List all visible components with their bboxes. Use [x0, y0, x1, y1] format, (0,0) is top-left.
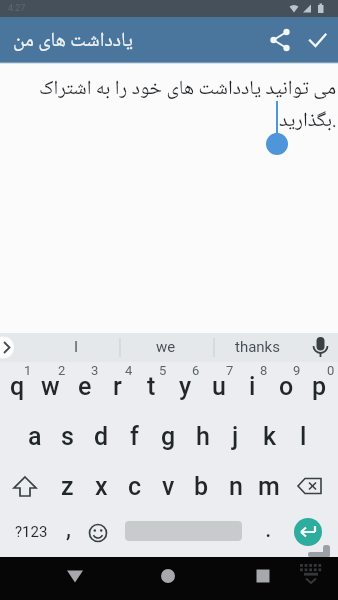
staticText: n	[229, 472, 243, 501]
button[interactable]	[298, 20, 338, 60]
button[interactable]: l	[287, 414, 320, 458]
staticText: thanks	[235, 338, 280, 356]
staticText: l	[300, 422, 307, 451]
staticText: s	[61, 422, 74, 451]
button[interactable]: ,	[56, 511, 80, 545]
staticText: 9	[293, 363, 301, 378]
button[interactable]: n	[219, 464, 252, 508]
button[interactable]: b	[185, 464, 218, 508]
button[interactable]: v	[152, 464, 185, 508]
staticText: i	[249, 372, 256, 401]
staticText: 0	[327, 363, 335, 378]
staticText: w	[41, 372, 60, 401]
staticText: r	[113, 372, 122, 401]
staticText: I	[74, 338, 79, 356]
button[interactable]: thanks	[214, 332, 300, 361]
button[interactable]: h	[186, 414, 219, 458]
button[interactable]: z	[51, 464, 84, 508]
button[interactable]	[260, 20, 300, 60]
button[interactable]: k	[253, 414, 286, 458]
button[interactable]: a	[18, 414, 51, 458]
staticText: ?123	[15, 523, 48, 541]
staticText: o	[279, 372, 294, 401]
staticText: b	[194, 472, 209, 501]
button[interactable]	[8, 470, 42, 504]
staticText: 5	[159, 363, 167, 378]
staticText: k	[263, 422, 277, 451]
staticText: v	[162, 472, 175, 501]
staticText: p	[312, 372, 327, 401]
staticText: m	[258, 472, 280, 501]
staticText: d	[94, 422, 109, 451]
staticText: 8	[260, 363, 268, 378]
button[interactable]: I	[36, 332, 116, 361]
button[interactable]: r	[101, 364, 134, 408]
staticText: h	[196, 422, 210, 451]
button[interactable]	[55, 557, 95, 597]
staticText: f	[130, 422, 139, 451]
staticText: 3	[91, 363, 99, 378]
button[interactable]: w	[34, 364, 67, 408]
staticText: ,	[66, 514, 71, 543]
button[interactable]: ?123	[6, 515, 56, 549]
button[interactable]: q	[1, 364, 34, 408]
button[interactable]: g	[152, 414, 185, 458]
staticText: z	[61, 472, 74, 501]
button[interactable]: we	[118, 332, 214, 361]
staticText: x	[95, 472, 108, 501]
button[interactable]: x	[85, 464, 118, 508]
staticText: 4:27	[8, 3, 26, 14]
staticText: می توانید یادداشت های خود را به اشتراک	[39, 73, 337, 107]
staticText: q	[10, 372, 25, 401]
button[interactable]	[148, 557, 188, 597]
staticText: 1	[24, 363, 32, 378]
button[interactable]: u	[202, 364, 235, 408]
staticText: بگذارید.	[279, 105, 337, 139]
staticText: .	[265, 514, 272, 543]
staticText: j	[232, 422, 239, 451]
staticText: we	[156, 338, 176, 356]
button[interactable]: p	[303, 364, 336, 408]
button[interactable]: j	[219, 414, 252, 458]
button[interactable]: s	[51, 414, 84, 458]
staticText: y	[179, 372, 192, 401]
button[interactable]: i	[236, 364, 269, 408]
staticText: t	[147, 372, 156, 401]
button[interactable]: c	[118, 464, 151, 508]
button[interactable]: .	[258, 511, 278, 545]
staticText: 6	[192, 363, 200, 378]
button[interactable]: d	[85, 414, 118, 458]
staticText: e	[78, 372, 92, 401]
button[interactable]: y	[169, 364, 202, 408]
button[interactable]	[294, 518, 322, 546]
staticText: g	[161, 422, 176, 451]
staticText: یادداشت های من	[13, 25, 133, 59]
staticText: u	[212, 372, 226, 401]
button[interactable]	[294, 470, 328, 504]
staticText: c	[128, 472, 142, 501]
staticText: 7	[226, 363, 234, 378]
button[interactable]	[84, 514, 112, 548]
staticText: 4	[125, 363, 133, 378]
button[interactable]: o	[270, 364, 303, 408]
staticText: 2	[58, 363, 66, 378]
staticText: a	[28, 422, 42, 451]
button[interactable]: m	[252, 464, 285, 508]
button[interactable]: e	[68, 364, 101, 408]
button[interactable]: f	[118, 414, 151, 458]
button[interactable]: t	[135, 364, 168, 408]
button[interactable]	[243, 557, 283, 597]
